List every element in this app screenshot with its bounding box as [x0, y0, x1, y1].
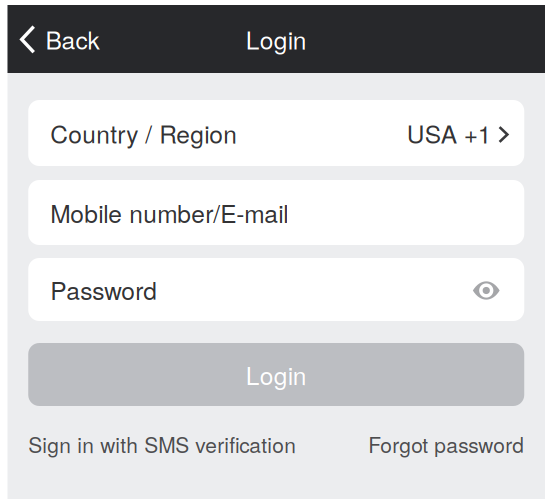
staticText: Mobile number/E-mail [50, 195, 288, 230]
staticText: Login [246, 21, 307, 56]
staticText: Back [45, 21, 99, 56]
button[interactable]: Mobile number/E-mail [28, 180, 524, 245]
staticText: Country / Region [50, 115, 237, 150]
button[interactable]: Sign in with SMS verification [28, 429, 296, 459]
button[interactable]: Country / Region [28, 100, 524, 166]
button[interactable]: Back [7, 5, 115, 73]
staticText: USA +1 [407, 115, 492, 150]
staticText: Sign in with SMS verification [28, 429, 296, 459]
button[interactable]: Password [28, 258, 524, 321]
button[interactable]: Forgot password [368, 429, 524, 459]
staticText: Password [50, 272, 157, 307]
button[interactable]: Login [28, 343, 524, 406]
staticText: Forgot password [368, 429, 524, 459]
staticText: Login [246, 357, 307, 392]
